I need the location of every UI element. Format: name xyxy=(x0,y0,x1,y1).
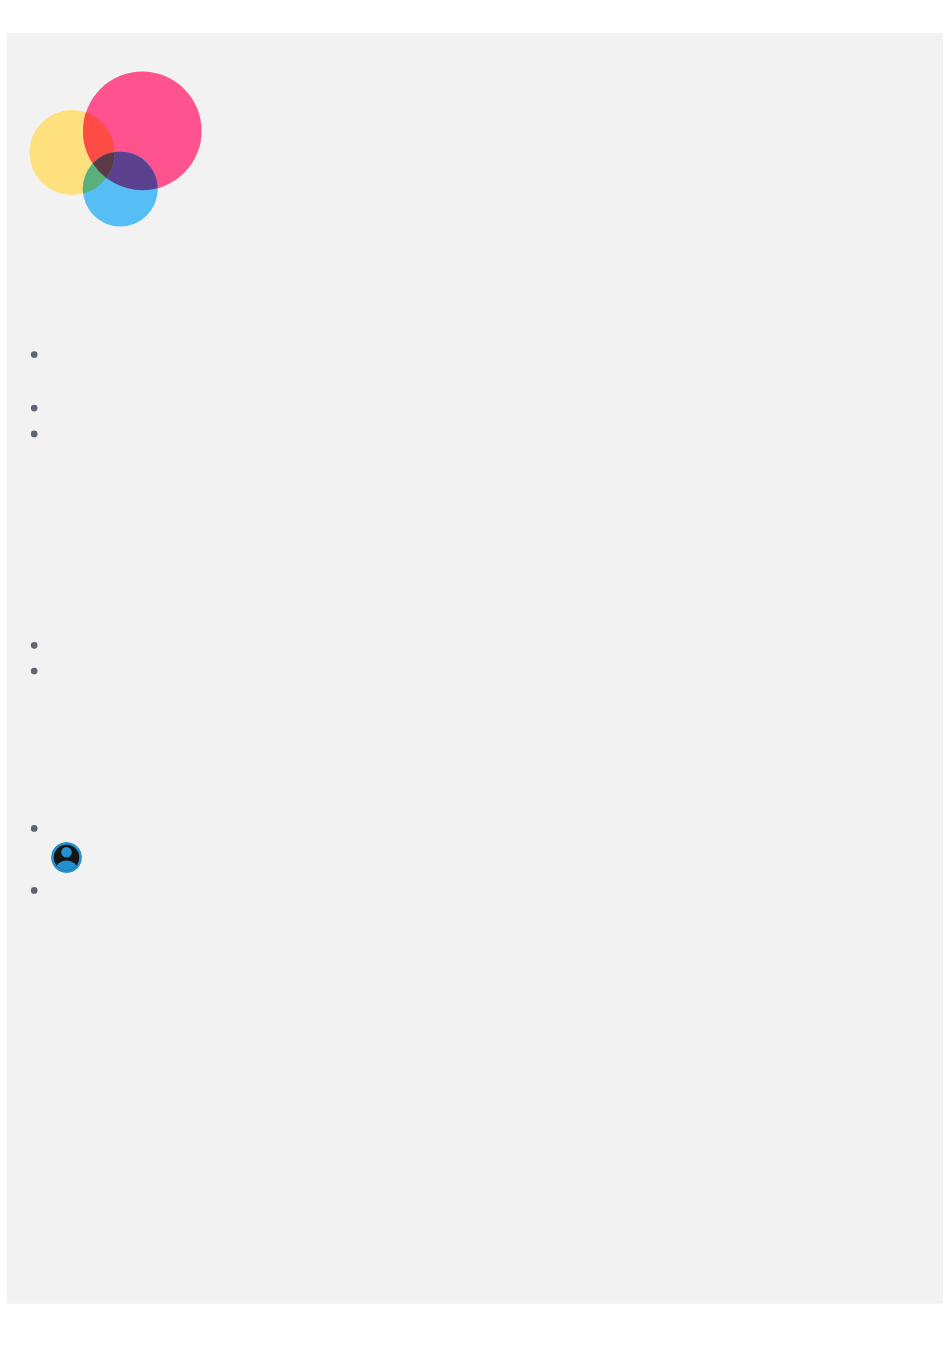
button[interactable]: List item xyxy=(7,877,943,903)
button[interactable]: Account xyxy=(51,842,82,873)
button[interactable]: List item xyxy=(7,342,943,368)
button[interactable]: List item xyxy=(7,658,943,684)
button[interactable]: List item xyxy=(7,395,943,421)
button[interactable]: List item xyxy=(7,815,943,841)
button[interactable]: Overlapping circles illustration xyxy=(29,72,201,227)
button[interactable]: List item xyxy=(7,421,943,447)
button[interactable]: List item xyxy=(7,632,943,658)
